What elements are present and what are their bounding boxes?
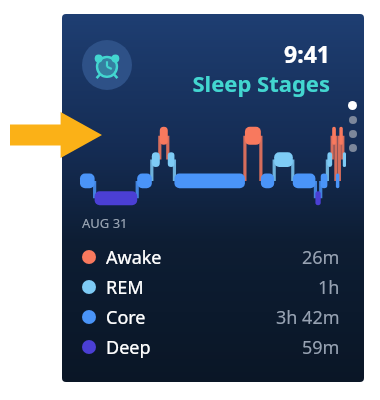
staticText: 1h <box>318 275 340 300</box>
button[interactable]: Alarm <box>82 40 132 90</box>
staticText: 9:41 <box>62 38 330 69</box>
staticText: 59m <box>302 335 340 360</box>
staticText: AUG 31 <box>82 214 128 232</box>
button[interactable]: Core <box>62 302 364 332</box>
staticText: Deep <box>106 335 151 360</box>
staticText: Core <box>106 305 146 330</box>
staticText: Awake <box>106 245 162 270</box>
other: Pointer <box>10 112 102 158</box>
button[interactable]: REM <box>62 272 364 302</box>
button[interactable]: Awake <box>62 242 364 272</box>
staticText: REM <box>106 275 144 300</box>
button[interactable]: Sleep Stages <box>62 68 330 98</box>
button[interactable]: Deep <box>62 332 364 362</box>
staticText: Sleep Stages <box>62 68 330 98</box>
button[interactable]: Sleep stages chart <box>80 126 346 208</box>
staticText: 3h 42m <box>276 305 340 330</box>
staticText: 26m <box>302 245 340 270</box>
